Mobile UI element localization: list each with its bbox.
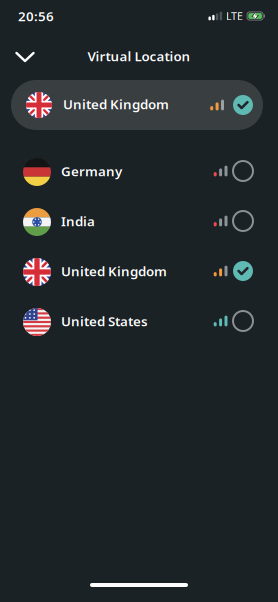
staticText: 20:56 [18, 7, 54, 25]
button[interactable]: United Kingdom [11, 80, 263, 130]
staticText: United Kingdom [63, 95, 169, 113]
staticText: LTE [226, 9, 243, 23]
button[interactable]: India [0, 197, 278, 247]
staticText: India [61, 212, 95, 230]
staticText: Germany [61, 162, 122, 180]
button[interactable]: United States [0, 297, 278, 347]
button[interactable]: United Kingdom [0, 247, 278, 297]
staticText: Virtual Location [87, 47, 190, 65]
button[interactable]: Germany [0, 147, 278, 197]
button[interactable]: Dismiss [0, 47, 37, 64]
staticText: United States [61, 312, 148, 330]
staticText: United Kingdom [61, 262, 167, 280]
